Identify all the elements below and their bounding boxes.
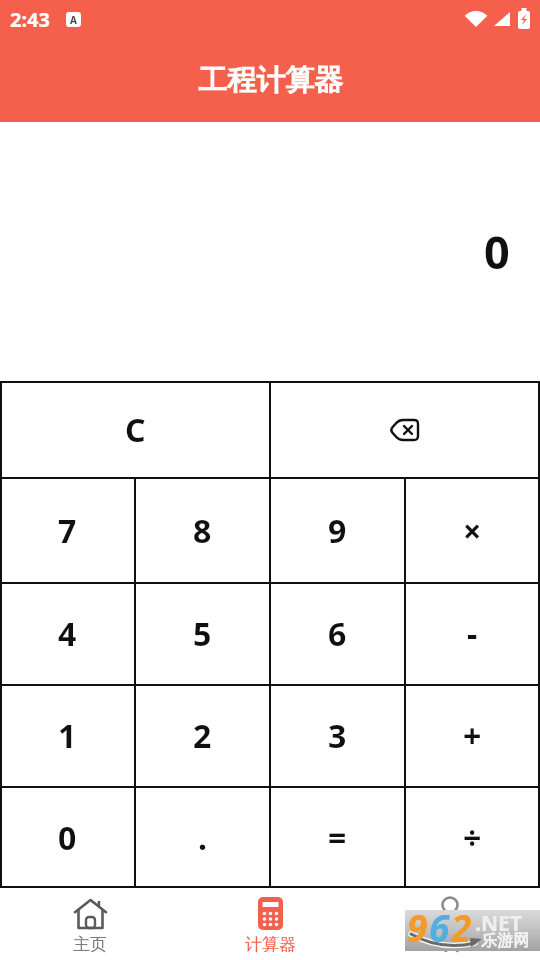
staticText: C [125, 408, 146, 452]
button[interactable]: ÷ [405, 787, 540, 888]
staticText: + [463, 714, 482, 758]
button[interactable]: 4 [0, 583, 135, 685]
button[interactable]: - [405, 583, 540, 685]
staticText: 3 [328, 714, 347, 758]
button[interactable]: 计算器 [180, 888, 360, 960]
staticText: 0 [484, 221, 510, 282]
staticText: 9 [328, 509, 347, 553]
button[interactable]: . [135, 787, 270, 888]
staticText: 工程计算器 [198, 62, 343, 99]
staticText: 主页 [73, 934, 107, 955]
staticText: 1 [58, 714, 77, 758]
button[interactable]: 8 [135, 478, 270, 583]
button[interactable]: = [270, 787, 405, 888]
staticText: - [467, 612, 478, 656]
button[interactable]: 9 [270, 478, 405, 583]
button[interactable]: 主页 [0, 888, 180, 960]
button[interactable] [270, 381, 540, 478]
staticText: 2:43 [10, 6, 50, 33]
staticText: = [328, 816, 347, 860]
button[interactable]: 5 [135, 583, 270, 685]
staticText: . [198, 816, 207, 860]
button[interactable]: 7 [0, 478, 135, 583]
button[interactable]: 1 [0, 685, 135, 787]
button[interactable]: 2 [135, 685, 270, 787]
staticText: 我 [442, 934, 459, 955]
staticText: 2 [193, 714, 212, 758]
staticText: 6 [429, 902, 450, 943]
staticText: A [70, 13, 77, 27]
button[interactable]: 0 [0, 787, 135, 888]
button[interactable]: C [0, 381, 270, 478]
staticText: 8 [193, 509, 212, 553]
staticText: × [463, 509, 482, 553]
staticText: ÷ [463, 816, 482, 860]
staticText: 计算器 [245, 934, 296, 955]
button[interactable]: 6 [270, 583, 405, 685]
button[interactable]: + [405, 685, 540, 787]
staticText: 乐游网 [481, 931, 529, 951]
button[interactable]: × [405, 478, 540, 583]
staticText: 9 [407, 902, 428, 943]
staticText: .NET [475, 909, 522, 938]
staticText: 7 [58, 509, 77, 553]
staticText: 5 [193, 612, 212, 656]
button[interactable]: 3 [270, 685, 405, 787]
staticText: 0 [58, 816, 77, 860]
button[interactable]: 我 [360, 888, 540, 960]
staticText: 4 [58, 612, 77, 656]
staticText: 6 [328, 612, 347, 656]
staticText: 2 [451, 902, 472, 943]
